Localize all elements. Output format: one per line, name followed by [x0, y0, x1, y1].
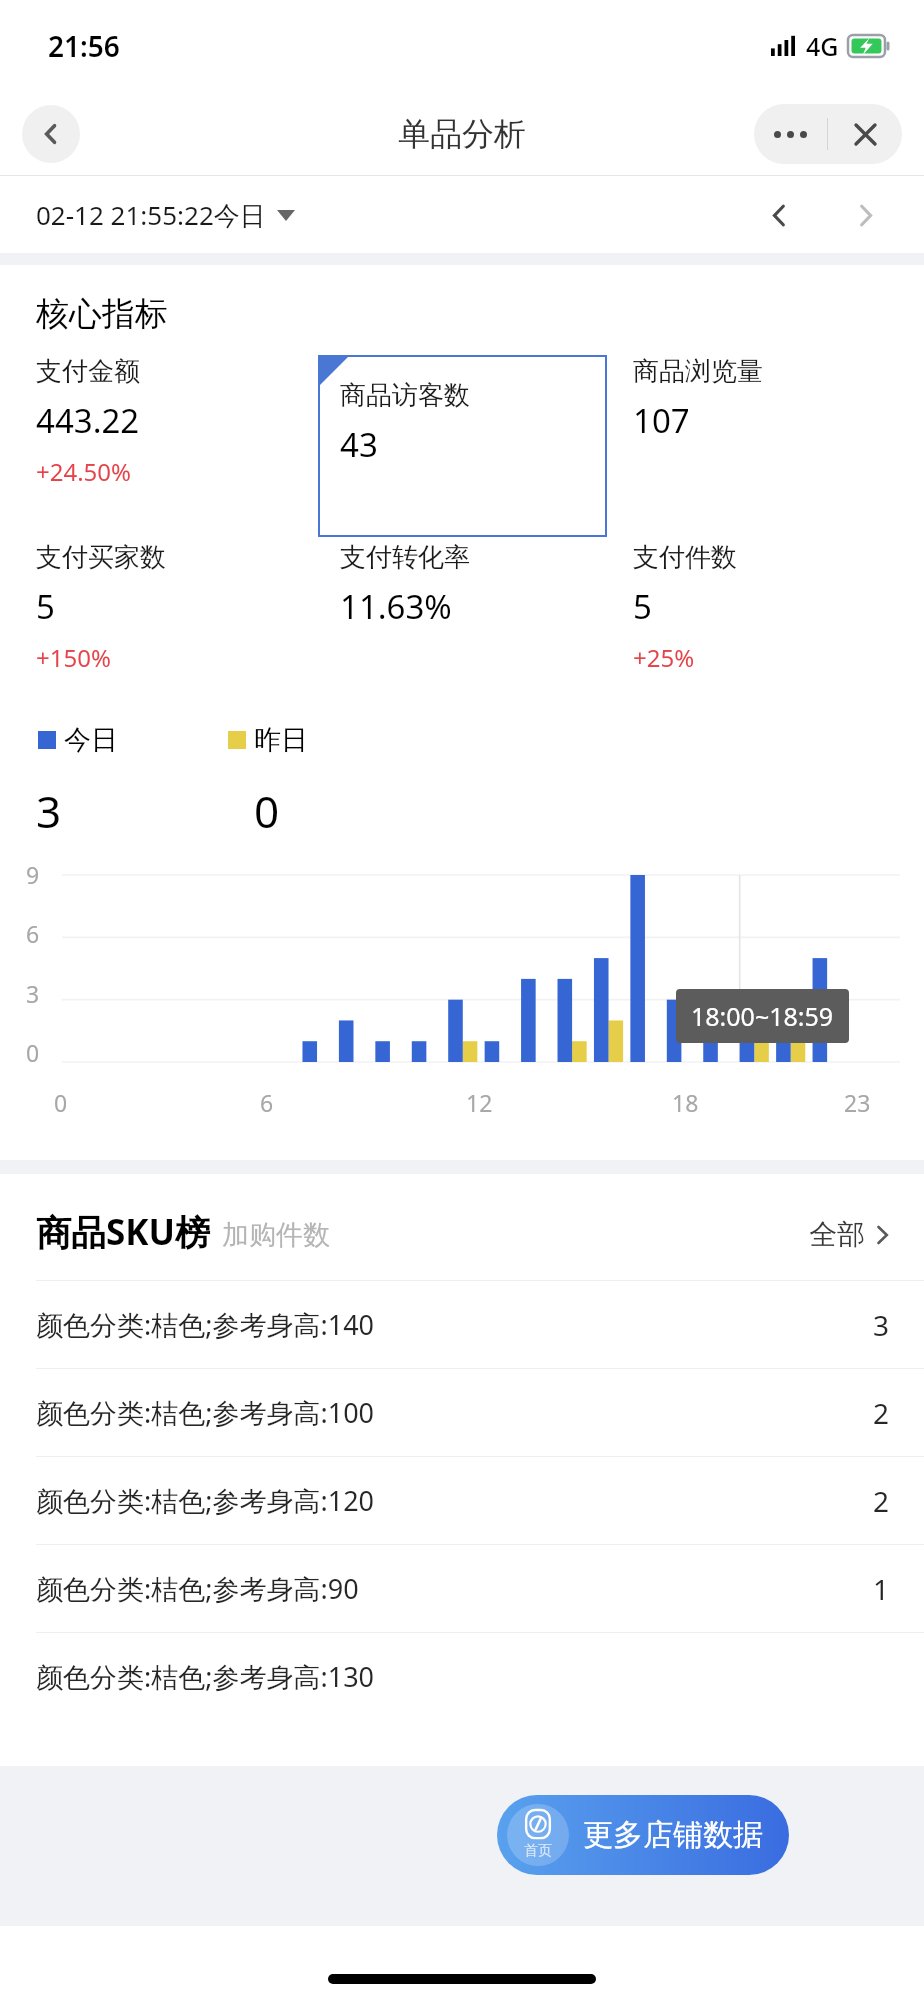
button[interactable]: Next day: [834, 184, 896, 246]
button[interactable]: 颜色分类:桔色;参考身高:90: [0, 1545, 924, 1632]
button[interactable]: 支付件数: [633, 541, 896, 723]
staticText: 107: [633, 398, 690, 443]
staticText: 0: [254, 781, 280, 841]
button[interactable]: 全部: [805, 1213, 894, 1256]
staticText: 单品分析: [398, 114, 526, 154]
button[interactable]: 颜色分类:桔色;参考身高:120: [0, 1457, 924, 1544]
staticText: 商品访客数: [340, 379, 470, 412]
staticText: 2: [873, 1394, 890, 1432]
staticText: +150%: [36, 641, 111, 674]
button[interactable]: 支付买家数: [36, 541, 318, 723]
staticText: 支付件数: [633, 541, 737, 574]
staticText: 43: [340, 422, 378, 467]
staticText: 支付金额: [36, 355, 140, 388]
staticText: +24.50%: [36, 455, 132, 488]
staticText: 6: [26, 918, 40, 949]
staticText: 12: [466, 1087, 493, 1118]
button[interactable]: Close: [828, 104, 902, 164]
staticText: 5: [36, 584, 55, 629]
staticText: 6: [260, 1087, 274, 1118]
staticText: 核心指标: [36, 293, 168, 335]
staticText: 支付买家数: [36, 541, 166, 574]
button[interactable]: 颜色分类:桔色;参考身高:140: [0, 1281, 924, 1368]
staticText: 4G: [806, 29, 839, 63]
button[interactable]: 02-12 21:55:22今日: [36, 197, 295, 233]
button[interactable]: 支付转化率: [340, 541, 607, 723]
staticText: 商品SKU榜: [36, 1208, 210, 1256]
staticText: 颜色分类:桔色;参考身高:130: [36, 1658, 375, 1695]
staticText: 0: [26, 1037, 40, 1068]
staticText: 21:56: [48, 27, 120, 65]
staticText: 全部: [809, 1217, 865, 1252]
staticText: 443.22: [36, 398, 140, 443]
staticText: 5: [633, 584, 652, 629]
button[interactable]: Previous day: [748, 184, 810, 246]
staticText: 颜色分类:桔色;参考身高:100: [36, 1394, 375, 1431]
staticText: 更多店铺数据: [583, 1816, 763, 1854]
staticText: 11.63%: [340, 584, 452, 629]
staticText: 今日: [64, 723, 118, 757]
staticText: 9: [26, 859, 40, 890]
staticText: 18: [672, 1087, 699, 1118]
button[interactable]: 商品浏览量: [633, 355, 896, 537]
button[interactable]: 商品访客数: [318, 355, 607, 537]
staticText: 3: [36, 781, 62, 841]
staticText: 23: [844, 1087, 871, 1118]
staticText: 颜色分类:桔色;参考身高:140: [36, 1306, 375, 1343]
button[interactable]: More options: [754, 104, 827, 164]
staticText: 2: [873, 1482, 890, 1520]
staticText: 0: [54, 1087, 68, 1118]
staticText: +25%: [633, 641, 695, 674]
staticText: 18:00~18:59: [691, 999, 834, 1033]
staticText: 颜色分类:桔色;参考身高:120: [36, 1482, 375, 1519]
button[interactable]: 首页: [497, 1795, 789, 1875]
staticText: 首页: [524, 1842, 552, 1860]
staticText: 02-12 21:55:22今日: [36, 197, 266, 233]
button[interactable]: 支付金额: [36, 355, 318, 537]
button[interactable]: 颜色分类:桔色;参考身高:100: [0, 1369, 924, 1456]
staticText: 加购件数: [222, 1218, 330, 1252]
staticText: 支付转化率: [340, 541, 470, 574]
staticText: 3: [873, 1306, 890, 1344]
staticText: 1: [873, 1570, 890, 1608]
staticText: 商品浏览量: [633, 355, 763, 388]
button[interactable]: 颜色分类:桔色;参考身高:130: [0, 1633, 924, 1720]
button[interactable]: Back: [22, 105, 80, 163]
staticText: 昨日: [254, 723, 308, 757]
staticText: 3: [26, 978, 40, 1009]
staticText: 颜色分类:桔色;参考身高:90: [36, 1570, 359, 1607]
